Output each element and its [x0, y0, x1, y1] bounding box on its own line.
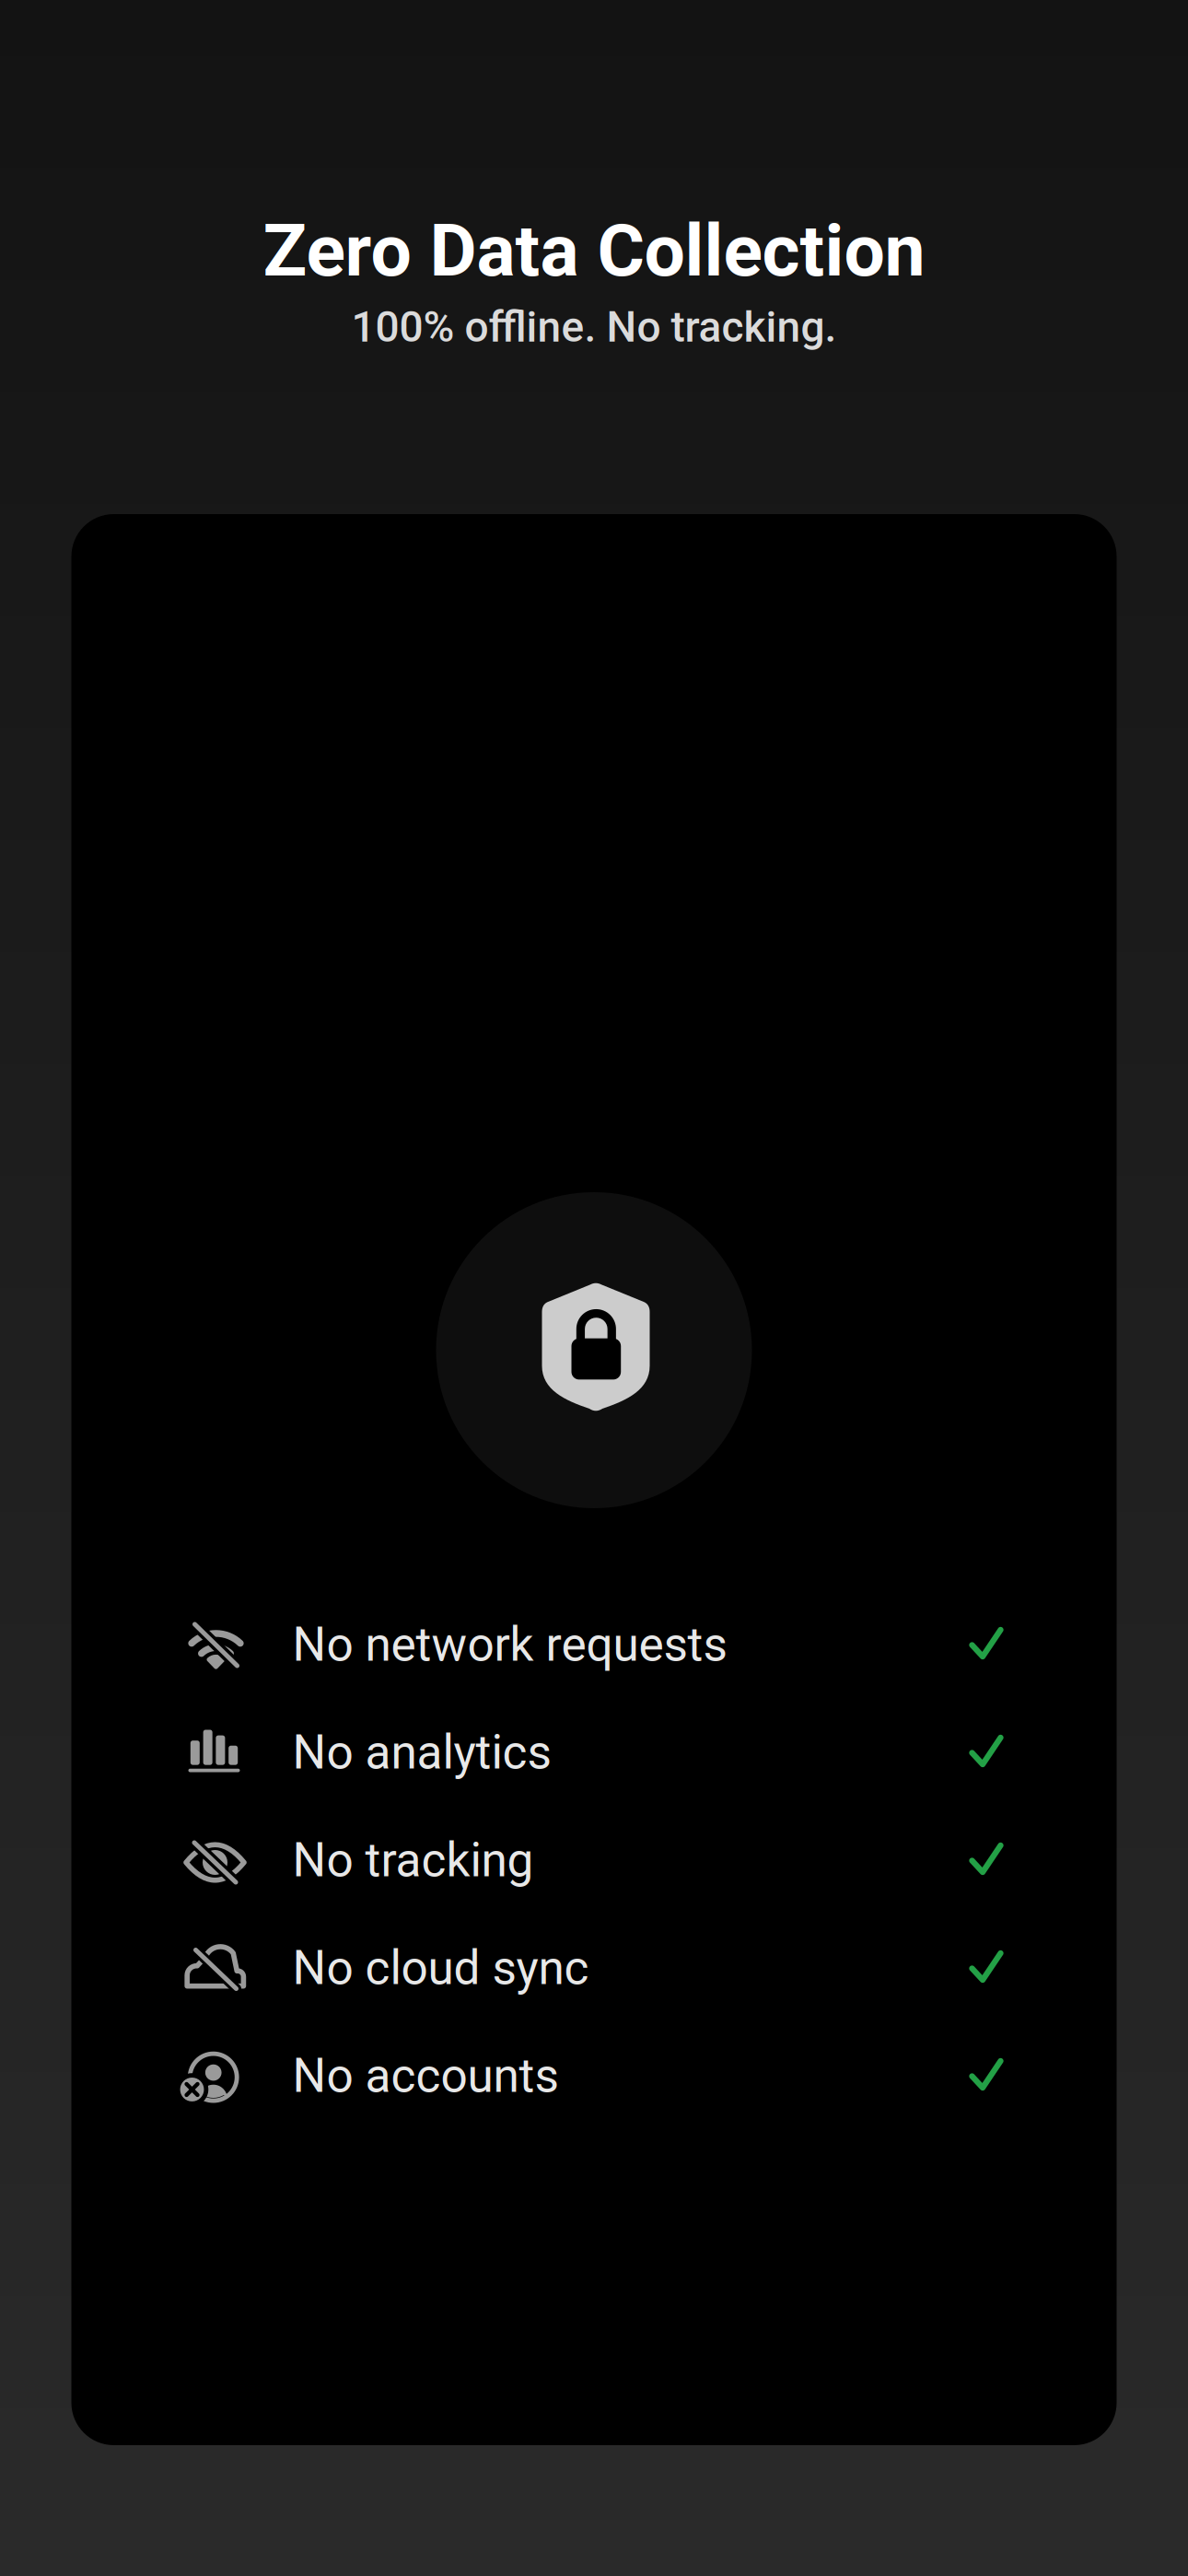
- button[interactable]: No network requests: [182, 1589, 1001, 1697]
- button[interactable]: No tracking: [182, 1805, 1001, 1913]
- staticText: 100% offline. No tracking.: [351, 302, 837, 352]
- staticText: No accounts: [292, 2048, 559, 2103]
- staticText: No analytics: [292, 1725, 551, 1780]
- button[interactable]: No cloud sync: [182, 1913, 1001, 2020]
- staticText: Zero Data Collection: [263, 208, 925, 293]
- button[interactable]: No accounts: [182, 2020, 1001, 2128]
- staticText: No network requests: [292, 1617, 727, 1672]
- staticText: No cloud sync: [292, 1940, 589, 1996]
- button[interactable]: No analytics: [182, 1697, 1001, 1805]
- staticText: No tracking: [292, 1832, 534, 1888]
